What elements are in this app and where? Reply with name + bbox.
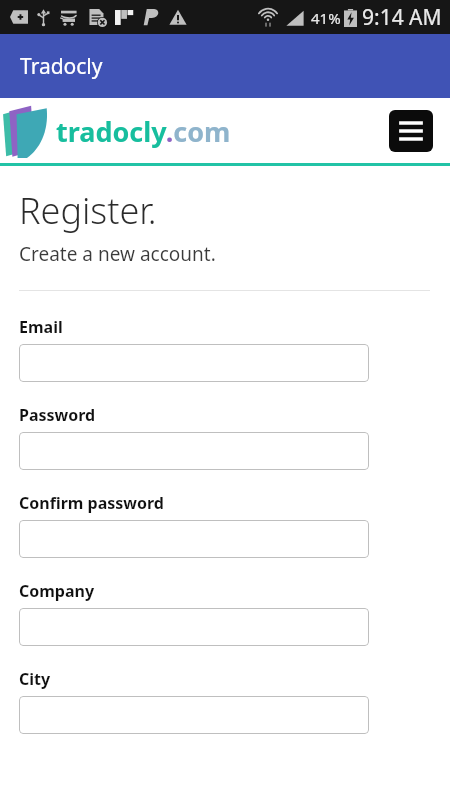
staticText: Company: [19, 580, 95, 602]
staticText: tradocly.com: [56, 113, 231, 150]
staticText: City: [19, 668, 51, 690]
staticText: Create a new account.: [19, 241, 216, 267]
button[interactable]: Open menu: [389, 110, 433, 152]
button[interactable]: tradocly.com: [2, 101, 231, 161]
button[interactable]: Tradocly: [0, 34, 450, 98]
staticText: Email: [19, 316, 63, 338]
staticText: Confirm password: [19, 492, 164, 514]
staticText: Password: [19, 404, 96, 426]
button[interactable]: [19, 432, 369, 470]
staticText: Register.: [19, 186, 157, 235]
button[interactable]: [19, 608, 369, 646]
button[interactable]: [19, 520, 369, 558]
staticText: 9:14 AM: [362, 3, 442, 32]
staticText: Tradocly: [20, 52, 103, 81]
button[interactable]: [19, 696, 369, 734]
button[interactable]: [19, 344, 369, 382]
staticText: 41%: [311, 8, 341, 28]
